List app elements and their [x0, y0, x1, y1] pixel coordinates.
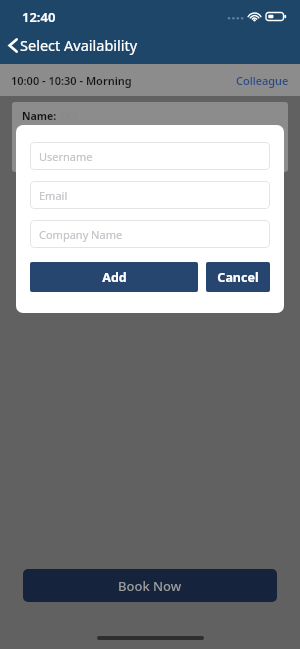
button[interactable]: Add: [30, 262, 198, 292]
staticText: Company Name: [39, 227, 123, 242]
button[interactable]: Back: [0, 31, 152, 59]
staticText: Colleague: [236, 73, 289, 88]
other: Back: [8, 38, 18, 53]
button[interactable]: Email: [30, 181, 270, 209]
staticText: Cancel: [217, 269, 259, 286]
staticText: Email: [39, 188, 68, 203]
staticText: Book Now: [118, 577, 182, 595]
staticText: Name:: [22, 109, 60, 123]
button[interactable]: Username: [30, 142, 270, 170]
staticText: 12:40: [22, 8, 56, 26]
button[interactable]: 10:00 - 10:30 - Morning: [0, 64, 300, 96]
button[interactable]: Book Now: [23, 569, 277, 602]
staticText: Username: [39, 149, 93, 164]
staticText: 10:00 - 10:30 - Morning: [11, 73, 132, 88]
staticText: Select Availability: [20, 35, 138, 55]
staticText: Add: [102, 269, 127, 286]
button[interactable]: Company Name: [30, 220, 270, 248]
button[interactable]: Cancel: [206, 262, 270, 292]
